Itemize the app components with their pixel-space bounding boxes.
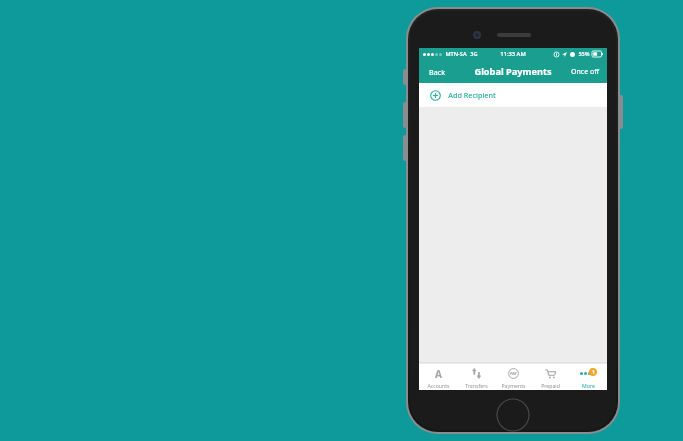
button[interactable]: A [420, 363, 456, 390]
staticText: Add Recipient [448, 90, 496, 100]
button[interactable]: Add Recipient [419, 83, 607, 107]
staticText: Payments [501, 382, 526, 389]
staticText: Accounts [427, 382, 450, 389]
other: Add Recipient [430, 90, 441, 101]
staticText: Back [429, 67, 445, 77]
staticText: More [582, 382, 595, 389]
staticText: PAY [510, 371, 517, 376]
staticText: Prepaid [541, 382, 560, 389]
button[interactable]: Once off [563, 63, 607, 81]
button[interactable]: Payments [495, 363, 531, 390]
other: Transfers [471, 368, 482, 379]
other: Prepaid [545, 368, 556, 379]
staticText: Transfers [465, 382, 488, 389]
staticText: Once off [571, 67, 599, 77]
button[interactable]: Transfers [458, 363, 494, 390]
staticText: Global Payments [474, 65, 552, 78]
other: More [579, 368, 597, 379]
staticText: A [435, 367, 442, 380]
staticText: 11:33 AM [500, 50, 526, 58]
staticText: 55% [578, 50, 590, 58]
staticText: 1 [592, 369, 595, 376]
staticText: 3G [470, 50, 478, 58]
staticText: MTN-SA [445, 50, 467, 58]
other: Payments [508, 368, 519, 379]
button[interactable]: More [570, 363, 606, 390]
button[interactable]: Prepaid [532, 363, 568, 390]
button[interactable]: Back [419, 63, 455, 81]
